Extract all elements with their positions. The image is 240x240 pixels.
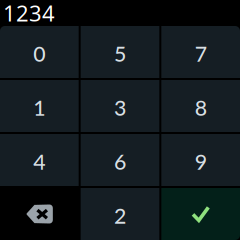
- staticText: 6: [114, 149, 126, 174]
- button[interactable]: 0: [0, 26, 79, 78]
- button[interactable]: 5: [81, 26, 159, 78]
- button[interactable]: 7: [161, 26, 240, 78]
- staticText: 3: [114, 95, 126, 120]
- button[interactable]: 9: [161, 134, 240, 186]
- button[interactable]: Confirm: [161, 188, 240, 240]
- staticText: 9: [195, 149, 207, 174]
- button[interactable]: 4: [0, 134, 79, 186]
- button[interactable]: 8: [161, 80, 240, 132]
- staticText: 1: [33, 95, 45, 120]
- staticText: 7: [195, 41, 207, 66]
- button[interactable]: Delete: [0, 188, 79, 240]
- button[interactable]: 2: [81, 188, 159, 240]
- staticText: 2: [114, 203, 126, 228]
- staticText: 4: [33, 149, 45, 174]
- staticText: 1234: [3, 0, 55, 28]
- staticText: 5: [114, 41, 126, 66]
- button[interactable]: 1: [0, 80, 79, 132]
- button[interactable]: 3: [81, 80, 159, 132]
- staticText: 8: [195, 95, 207, 120]
- staticText: 0: [33, 41, 45, 66]
- button[interactable]: 6: [81, 134, 159, 186]
